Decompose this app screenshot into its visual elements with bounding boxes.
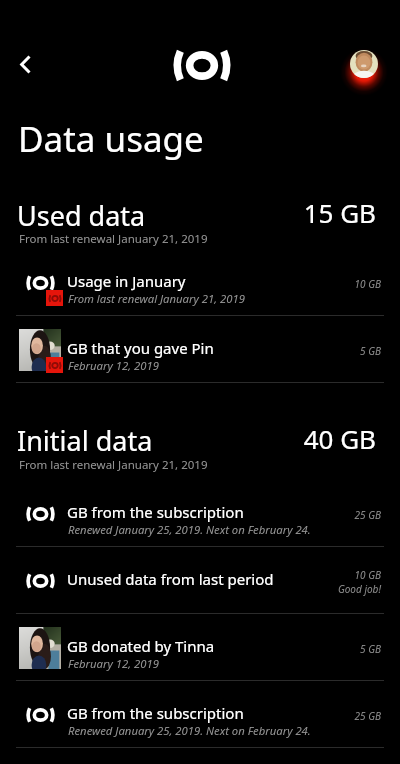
button[interactable]: GB donated by Tinna	[0, 614, 400, 681]
staticText: Initial data	[17, 422, 153, 459]
staticText: February 12, 2019	[68, 656, 159, 671]
staticText: 10 GB	[0, 568, 381, 582]
staticText: 25 GB	[0, 508, 381, 522]
staticText: Usage in January	[67, 271, 186, 291]
staticText: 25 GB	[0, 709, 381, 723]
staticText: From last renewal January 21, 2019	[19, 457, 208, 473]
button[interactable]: Profile	[335, 35, 393, 93]
staticText: GB donated by Tinna	[67, 636, 215, 656]
staticText: 15 GB	[0, 195, 376, 230]
staticText: GB from the subscription	[67, 703, 244, 723]
staticText: 10 GB	[0, 277, 381, 291]
staticText: GB from the subscription	[67, 502, 244, 522]
staticText: February 12, 2019	[68, 358, 159, 373]
staticText: Used data	[17, 197, 146, 234]
button[interactable]: GB from the subscription	[0, 681, 400, 748]
button[interactable]: GB from the subscription	[0, 480, 400, 547]
staticText: Renewed January 25, 2019. Next on Februa…	[68, 723, 311, 738]
staticText: Data usage	[18, 115, 204, 163]
button[interactable]: Usage in January	[0, 249, 400, 316]
staticText: From last renewal January 21, 2019	[19, 231, 208, 247]
staticText: 5 GB	[0, 344, 381, 358]
staticText: Renewed January 25, 2019. Next on Februa…	[68, 522, 311, 537]
staticText: Unused data from last period	[67, 569, 274, 589]
button[interactable]: Unused data from last period	[0, 547, 400, 614]
staticText: 5 GB	[0, 642, 381, 656]
staticText: Good job!	[0, 582, 381, 596]
staticText: GB that you gave Pin	[67, 338, 214, 358]
staticText: 40 GB	[0, 421, 376, 456]
staticText: From last renewal January 21, 2019	[68, 291, 245, 306]
button[interactable]: Back	[3, 42, 47, 86]
button[interactable]: GB that you gave Pin	[0, 316, 400, 383]
